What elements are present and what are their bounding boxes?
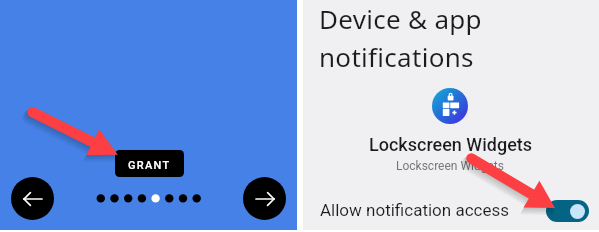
button[interactable]: Previous (11, 177, 54, 220)
button[interactable]: GRANT (115, 150, 184, 177)
staticText: GRANT (128, 159, 171, 172)
staticText: Lockscreen Widgets (369, 134, 533, 155)
staticText: Lockscreen Widgets (396, 159, 504, 173)
button[interactable]: Allow notification access (303, 190, 599, 230)
button[interactable]: Next (243, 177, 286, 220)
button[interactable]: Allow notification access (546, 200, 589, 222)
staticText: Allow notification access (320, 200, 509, 220)
staticText: Device & app notifications (319, 1, 482, 74)
